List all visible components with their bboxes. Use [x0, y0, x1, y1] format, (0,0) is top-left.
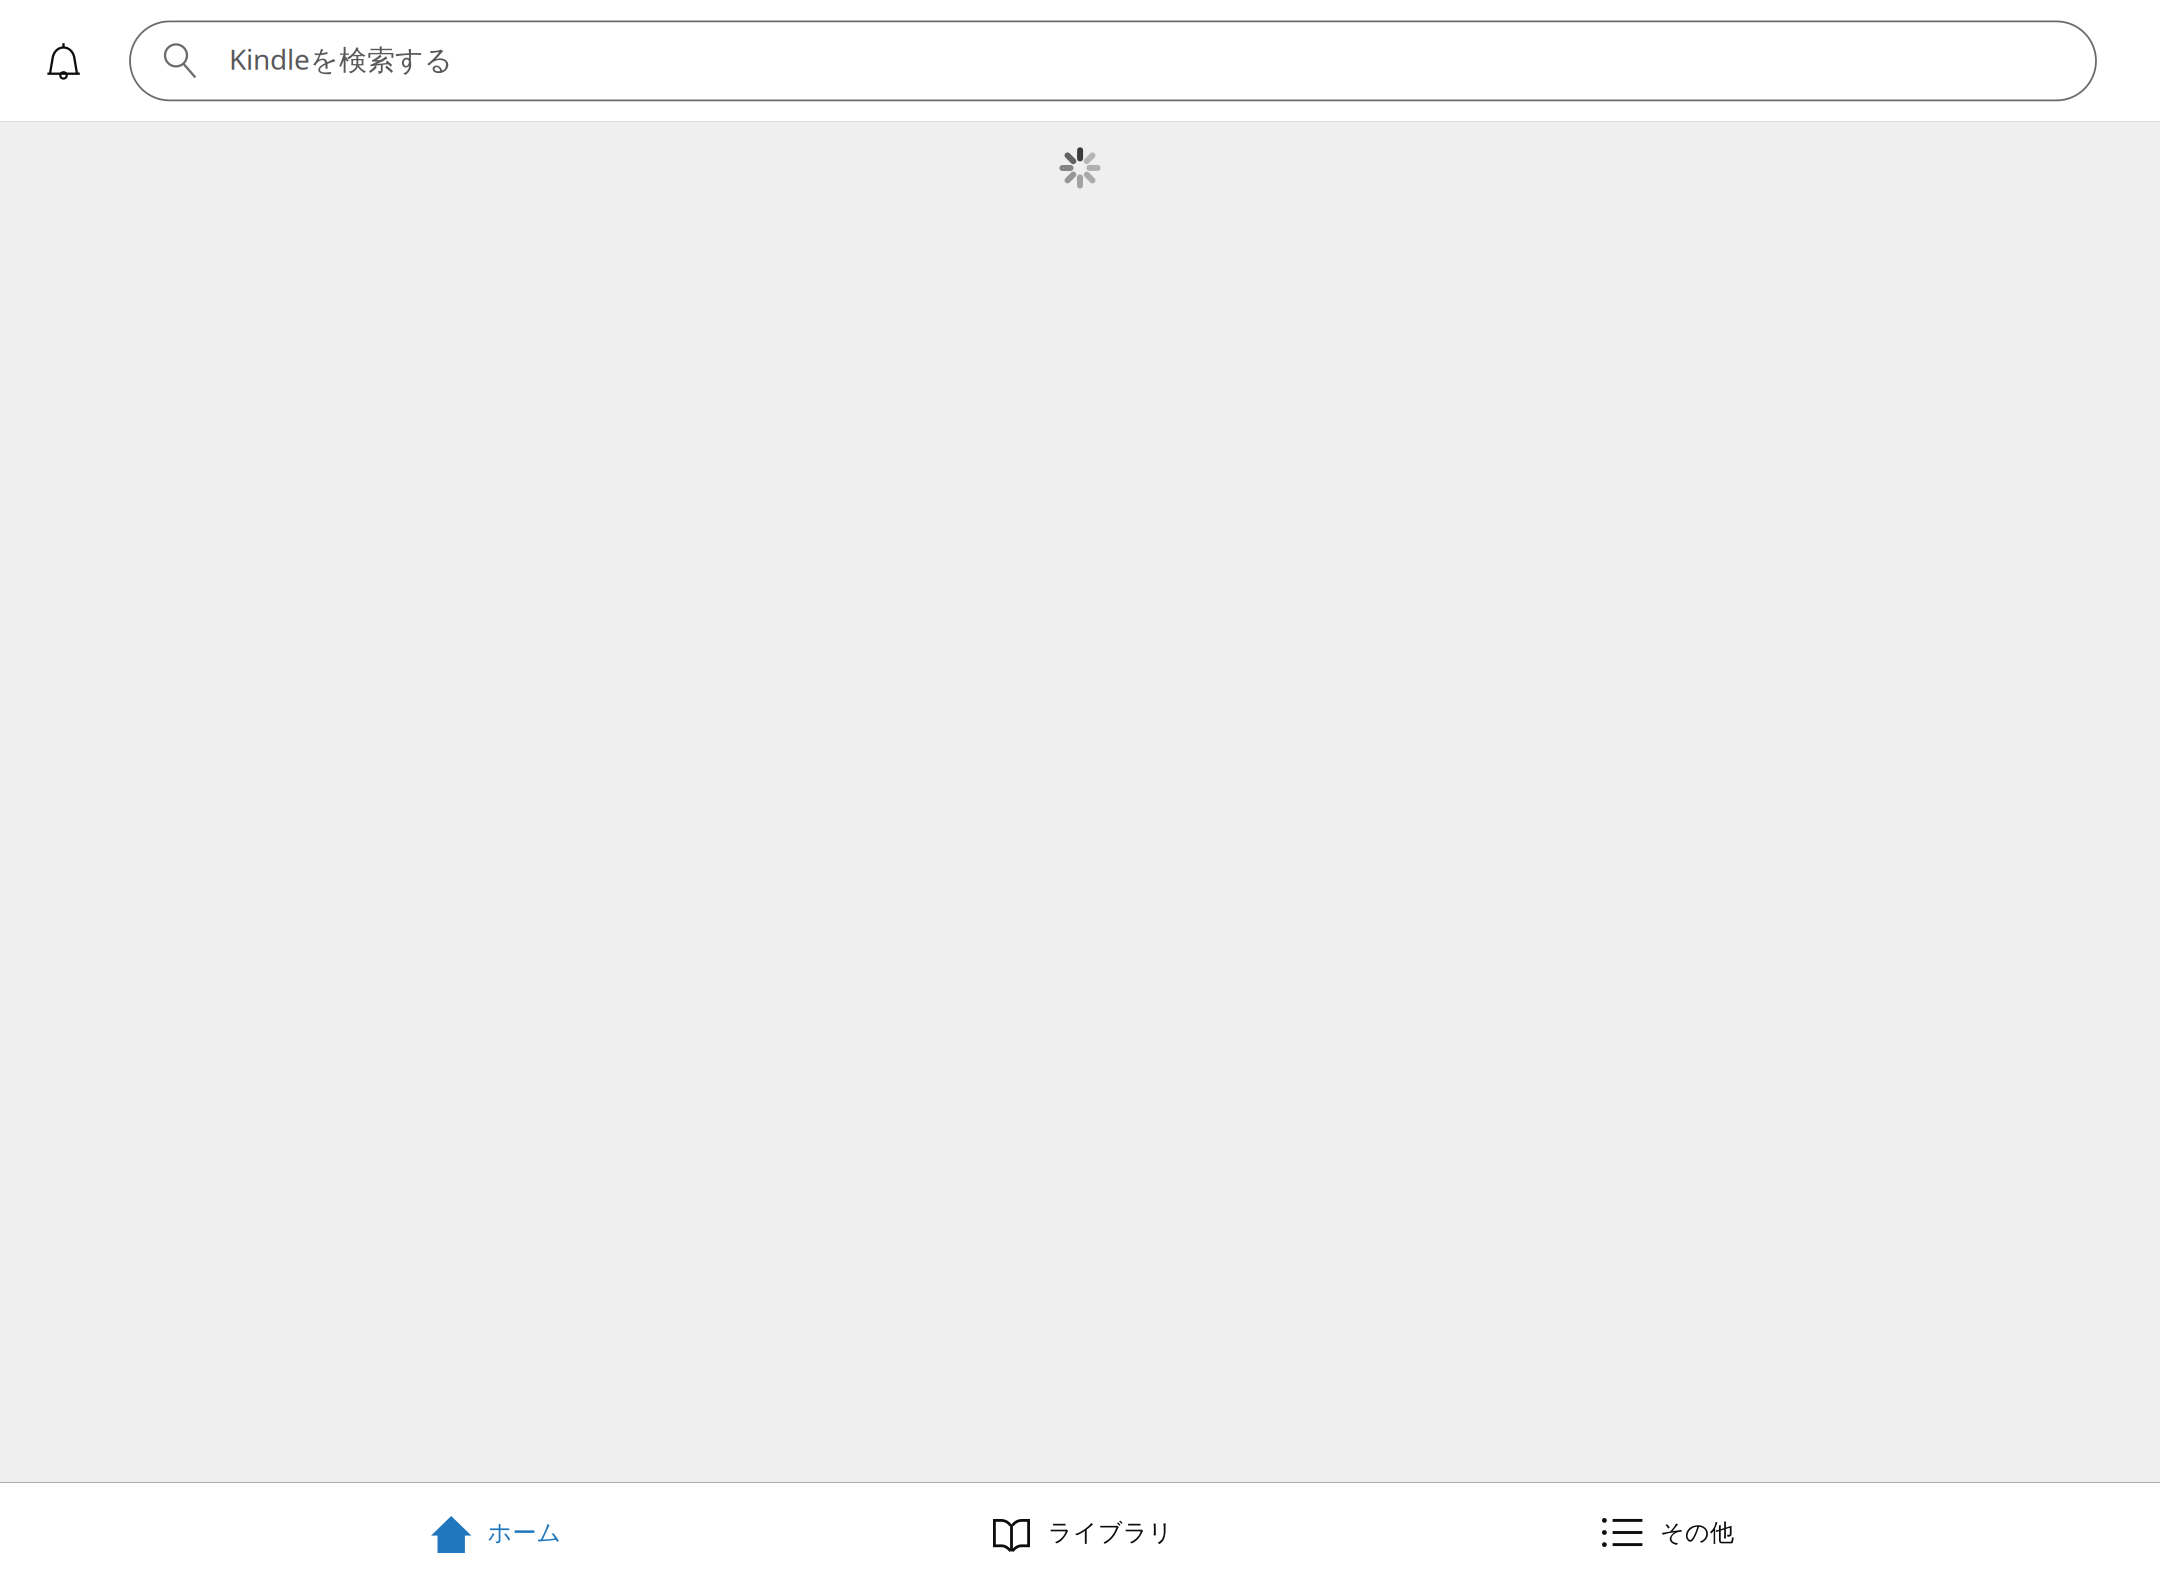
- button[interactable]: Notifications: [0, 0, 101, 121]
- staticText: ライブラリ: [1048, 1518, 1173, 1547]
- staticText: その他: [1660, 1518, 1734, 1547]
- staticText: ホーム: [487, 1518, 561, 1547]
- button[interactable]: Kindleを検索する: [130, 21, 2096, 100]
- staticText: Kindleを検索する: [229, 40, 453, 78]
- button[interactable]: ライブラリ: [953, 1482, 1353, 1581]
- button[interactable]: ホーム: [391, 1482, 791, 1581]
- button[interactable]: その他: [1562, 1482, 1962, 1581]
